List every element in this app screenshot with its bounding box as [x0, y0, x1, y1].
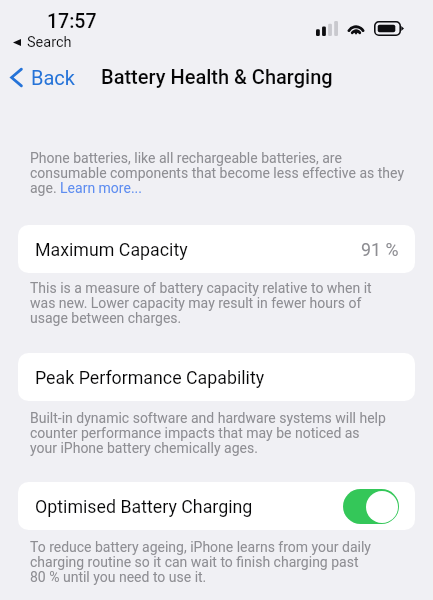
- other: Battery: [374, 21, 404, 36]
- staticText: Battery Health & Charging: [101, 65, 333, 88]
- button[interactable]: Peak Performance Capability: [18, 353, 415, 401]
- staticText: To reduce battery ageing, iPhone learns …: [30, 540, 371, 585]
- staticText: Optimised Battery Charging: [35, 496, 253, 517]
- staticText: Peak Performance Capability: [35, 367, 265, 388]
- other: Cellular signal: [316, 21, 338, 36]
- staticText: 17:57: [47, 10, 97, 33]
- other: Wi-Fi: [346, 21, 366, 35]
- staticText: Back: [31, 66, 75, 89]
- button[interactable]: Maximum Capacity: [18, 225, 415, 273]
- button[interactable]: Back: [6, 66, 79, 89]
- staticText: Built-in dynamic software and hardware s…: [30, 411, 386, 456]
- staticText: Phone batteries, like all rechargeable b…: [30, 151, 405, 196]
- button[interactable]: Search: [13, 34, 72, 51]
- staticText: 91 %: [361, 239, 399, 260]
- button[interactable]: Optimised Battery Charging: [18, 482, 415, 530]
- staticText: This is a measure of battery capacity re…: [30, 281, 372, 326]
- staticText: Search: [27, 34, 72, 51]
- button[interactable]: Optimised Battery Charging toggle, on: [343, 489, 399, 524]
- staticText: Maximum Capacity: [35, 239, 188, 260]
